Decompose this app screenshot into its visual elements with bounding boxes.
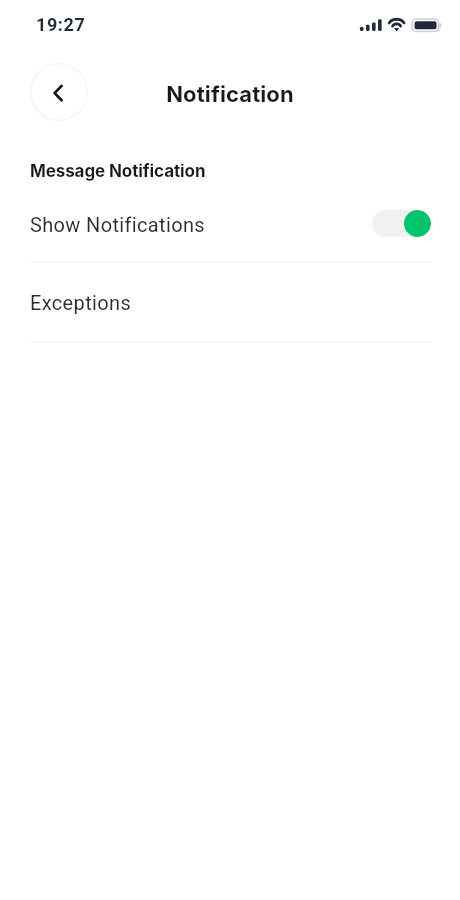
staticText: Notification (0, 81, 460, 108)
staticText: Show Notifications (30, 213, 206, 236)
button[interactable]: Exceptions (0, 263, 460, 342)
staticText: 19:27 (36, 14, 86, 35)
button[interactable]: Show Notifications toggle, on (372, 210, 431, 237)
staticText: Exceptions (30, 291, 132, 314)
button[interactable]: Show Notifications (0, 194, 460, 255)
staticText: Message Notification (30, 161, 206, 182)
button[interactable]: Back (30, 63, 88, 121)
